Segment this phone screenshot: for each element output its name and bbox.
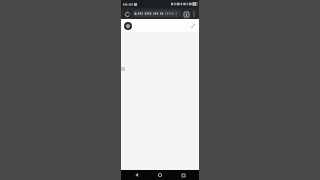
button[interactable]: Back bbox=[130, 170, 144, 180]
button[interactable]: Home bbox=[153, 170, 167, 180]
button[interactable]: Switch tabs bbox=[182, 10, 190, 18]
button[interactable]: Recent apps bbox=[176, 170, 190, 180]
button[interactable]: More options bbox=[190, 10, 197, 17]
button[interactable] bbox=[132, 10, 181, 17]
button[interactable]: Site logo, home bbox=[123, 21, 132, 30]
button[interactable]: Reload page bbox=[123, 10, 131, 18]
button[interactable]: Call bbox=[189, 22, 197, 30]
